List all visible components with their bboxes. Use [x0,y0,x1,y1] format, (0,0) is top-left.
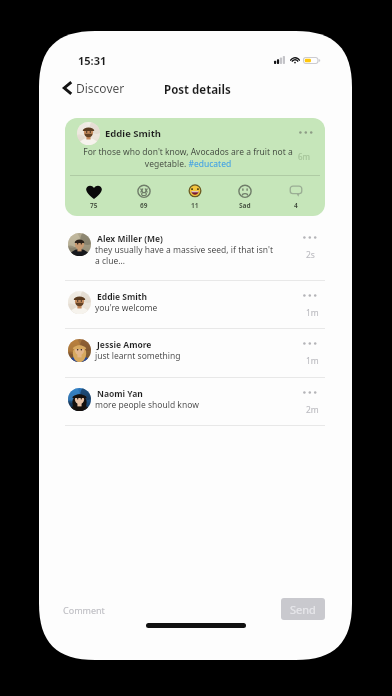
staticText: Discover [76,80,125,96]
staticText: Send [290,602,316,617]
staticText: For those who don't know, Avocados are a… [82,146,294,170]
button[interactable]: Send [281,598,325,620]
staticText: 6m [298,151,311,162]
staticText: Comment [63,604,105,616]
staticText: Post details [164,82,231,98]
staticText: 15:31 [78,53,107,68]
staticText: 75 [90,201,98,210]
staticText: Eddie Smith [97,291,148,303]
staticText: 1m [306,355,319,367]
staticText: Sad [239,201,251,210]
button[interactable]: Eddie Smith [65,118,325,216]
button[interactable]: Back to Discover [63,80,125,96]
staticText: 1m [306,307,319,319]
staticText: just learnt something [95,350,300,362]
button[interactable]: Comment [59,599,259,621]
button[interactable]: More options [293,123,317,141]
button[interactable]: Comment options [297,229,321,245]
staticText: 11 [191,201,199,210]
staticText: you're welcome [95,302,300,314]
button[interactable]: Jessie Amore [63,328,328,376]
button[interactable]: Eddie Smith [63,280,328,328]
button[interactable]: Alex Miller (Me) [63,222,328,281]
button[interactable]: Naomi Yan [63,377,328,425]
staticText: 2s [306,249,315,261]
staticText: Eddie Smith [105,127,161,140]
button[interactable]: Comment options [297,287,321,303]
staticText: 4 [294,201,298,210]
button[interactable]: Comment options [297,384,321,400]
staticText: Alex Miller (Me) [97,233,164,245]
staticText: 69 [140,201,148,210]
staticText: more people should know [95,399,300,411]
button[interactable]: Reaction 69 [122,176,166,216]
button[interactable]: Comment options [297,335,321,351]
staticText: Jessie Amore [97,339,152,351]
button[interactable]: Reaction 4 [274,176,318,216]
button[interactable]: Reaction 11 [173,176,217,216]
button[interactable]: Reaction 75 [72,176,116,216]
staticText: 2m [306,404,319,416]
button[interactable]: Reaction Sad [223,176,267,216]
staticText: they usually have a massive seed, if tha… [95,244,300,266]
staticText: Naomi Yan [97,388,143,400]
